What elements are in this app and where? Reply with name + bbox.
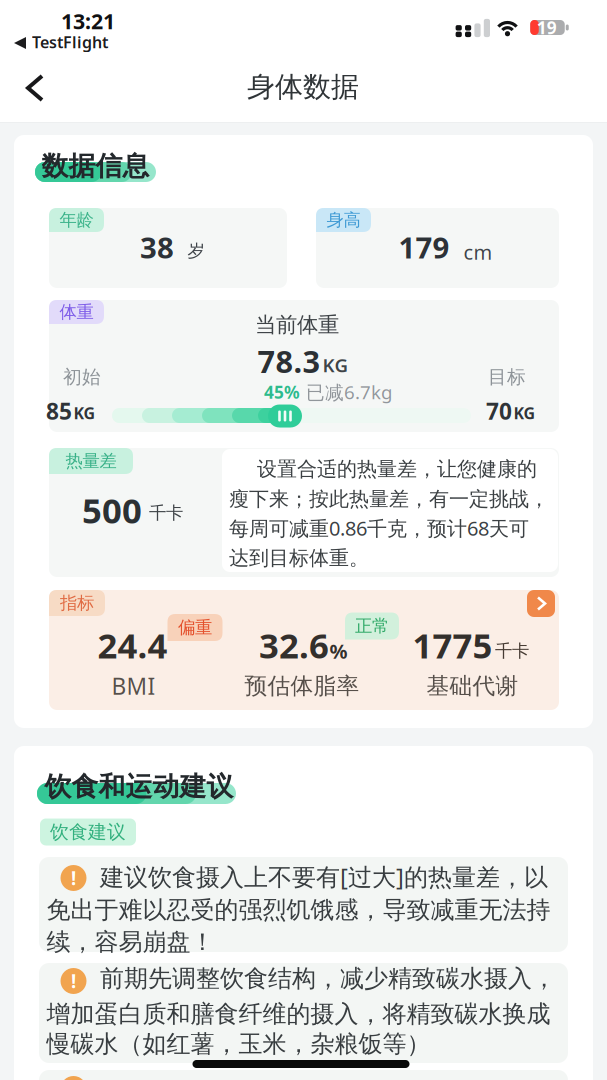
staticText: 年龄 [59,209,93,231]
staticText: 饮食建议 [50,820,126,843]
staticText: 饮食和运动建议 [44,770,233,803]
staticText: 增加蛋白质和膳食纤维的摄入，将精致碳水换成 [46,999,550,1029]
staticText: 45% [264,380,300,403]
staticText: 目标 [488,365,526,388]
staticText: 体重 [59,301,93,323]
staticText: 慢碳水（如红薯，玉米，杂粮饭等） [46,1029,430,1059]
staticText: 32.6 [259,622,329,668]
staticText: 岁 [187,240,204,262]
staticText: cm [463,239,492,265]
staticText: 身体数据 [247,70,359,104]
staticText: 13:21 [61,7,115,35]
staticText: ! [71,866,76,890]
staticText: KG [73,402,95,424]
staticText: BMI [111,671,155,701]
button[interactable]: 查看指标详情 [527,590,555,617]
staticText: 免出于难以忍受的强烈饥饿感，导致减重无法持 [46,895,550,925]
staticText: 偏重 [178,617,212,638]
staticText: 19 [537,16,557,39]
staticText: 前期先调整饮食结构，减少精致碳水摄入， [100,964,556,993]
staticText: KG [513,402,535,424]
staticText: 已减6.7kg [306,380,392,404]
button[interactable]: 返回 [25,74,47,102]
staticText: 1775 [412,622,492,668]
staticText: KG [322,353,348,377]
staticText: 建议饮食摄入上不要有[过大]的热量差，以 [100,861,548,892]
staticText: % [329,638,347,664]
staticText: 设置合适的热量差，让您健康的 [257,457,537,481]
staticText: 预估体脂率 [244,672,359,700]
staticText: 85 [46,396,72,426]
staticText: 38 [140,227,174,266]
staticText: 当前体重 [255,312,339,338]
staticText: 初始 [63,365,101,388]
staticText: 70 [486,396,512,426]
staticText: 达到目标体重。 [229,546,369,570]
staticText: 正常 [355,615,389,637]
staticText: 热量差 [65,450,116,472]
staticText: 24.4 [97,622,167,668]
staticText: 78.3 [257,341,320,381]
staticText: 千卡 [495,640,529,662]
staticText: 每周可减重0.86千克，预计68天可 [229,515,529,541]
staticText: 500 [82,487,142,533]
staticText: 身高 [326,209,360,231]
staticText: 续，容易崩盘！ [46,927,214,957]
staticText: 瘦下来；按此热量差，有一定挑战， [229,487,549,511]
staticText: 数据信息 [41,150,149,182]
staticText: 千卡 [149,502,183,524]
staticText: 179 [398,227,449,266]
staticText: 基础代谢 [426,672,518,700]
staticText: 指标 [60,592,94,614]
staticText: TestFlight [32,31,108,53]
staticText: ! [71,969,76,993]
